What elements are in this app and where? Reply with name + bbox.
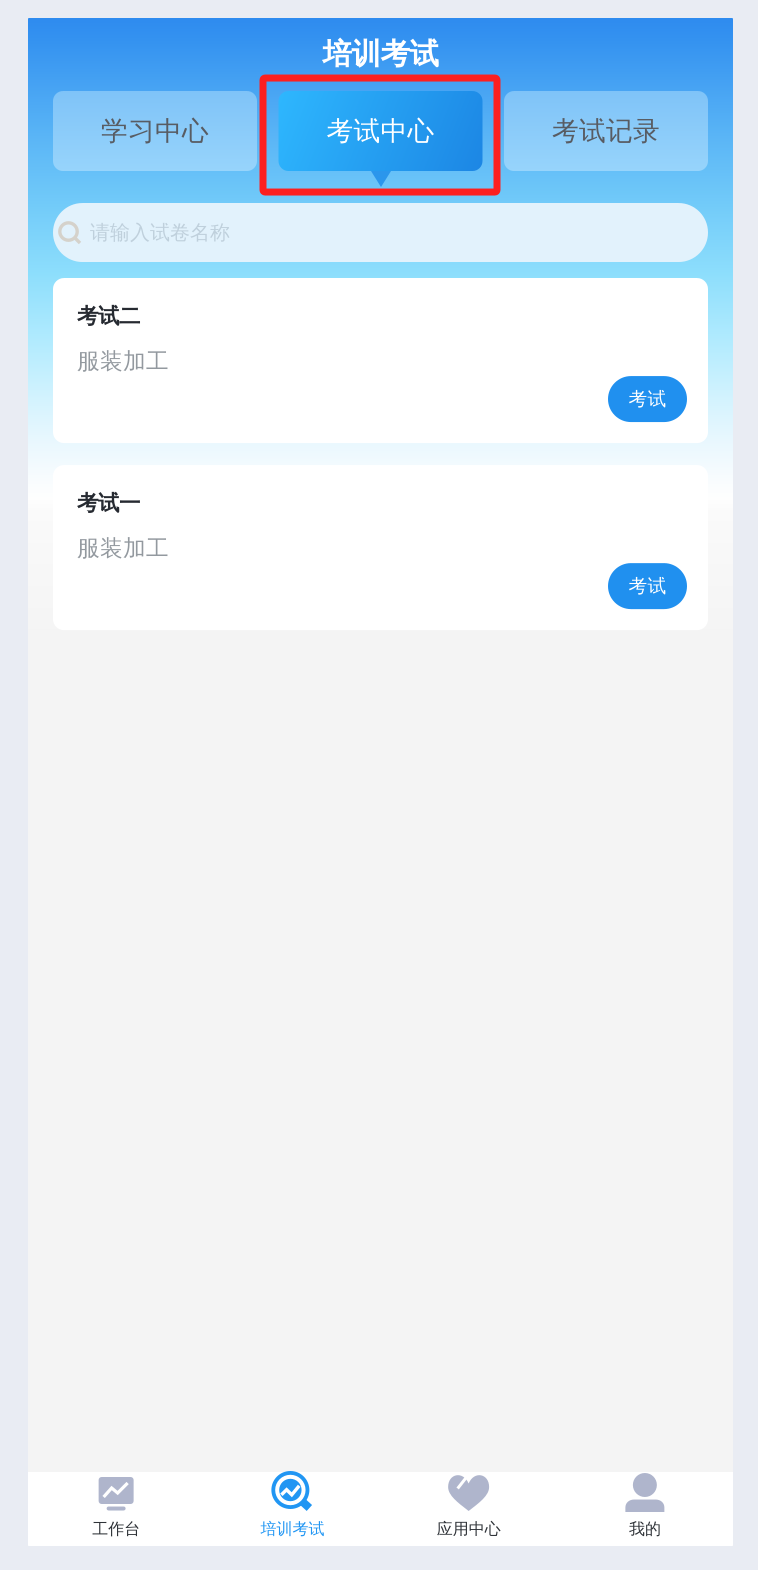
staticText: 考试二 (77, 303, 140, 329)
staticText: 培训考试 (322, 36, 438, 72)
staticText: 服装加工 (77, 534, 169, 562)
staticText: 考试一 (77, 490, 140, 516)
staticText: 服装加工 (77, 347, 169, 375)
staticText: 学习中心 (101, 115, 209, 147)
staticText: 考试 (628, 388, 666, 410)
staticText: 请输入试卷名称 (90, 220, 230, 245)
staticText: 我的 (629, 1519, 661, 1539)
button[interactable]: 请输入试卷名称 (28, 203, 733, 262)
staticText: 考试记录 (552, 115, 660, 147)
button[interactable]: 考试中心 (278, 91, 482, 171)
button[interactable]: 培训考试 (204, 1472, 380, 1546)
button[interactable]: 我的 (557, 1472, 733, 1546)
button[interactable]: 学习中心 (53, 91, 257, 171)
button[interactable]: 应用中心 (380, 1472, 557, 1546)
button[interactable]: 考试记录 (504, 91, 708, 171)
staticText: 考试 (628, 575, 666, 598)
button[interactable]: 考试 (608, 563, 687, 609)
staticText: 应用中心 (437, 1519, 501, 1539)
button[interactable]: 考试 (608, 376, 687, 422)
staticText: 培训考试 (260, 1519, 324, 1539)
button[interactable]: 工作台 (28, 1472, 204, 1546)
staticText: 工作台 (92, 1519, 140, 1539)
staticText: 考试中心 (326, 115, 434, 147)
